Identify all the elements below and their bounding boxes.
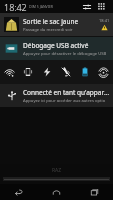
button[interactable]: Back xyxy=(0,184,37,200)
button[interactable]: Quick settings xyxy=(96,1,107,12)
staticText: DIM 5 JANVIER xyxy=(29,4,53,9)
staticText: Appuyez ici pour accéder aux autres opti… xyxy=(23,98,106,104)
button[interactable]: Auto brightness xyxy=(37,60,56,84)
button[interactable]: Settings xyxy=(81,1,92,12)
staticText: Connecté en tant qu'appareil multi. xyxy=(23,88,110,97)
staticText: Passage du mercredi soir xyxy=(23,27,73,33)
button[interactable]: Battery xyxy=(75,60,94,84)
button[interactable]: Hotspot xyxy=(94,60,113,84)
staticText: RAZ xyxy=(52,167,62,174)
staticText: Appuyez pour désactiver le débogage USB xyxy=(23,51,107,57)
button[interactable]: Home xyxy=(37,184,75,200)
button[interactable]: Sortie le sac jaune xyxy=(0,13,113,36)
staticText: 18:41 xyxy=(99,18,110,23)
button[interactable]: Recents xyxy=(75,184,113,200)
staticText: Sortie le sac jaune xyxy=(23,17,79,26)
button[interactable]: Vibrate xyxy=(18,60,37,84)
button[interactable]: Mute xyxy=(56,60,75,84)
button[interactable]: Connecté en tant qu'appareil multi. xyxy=(0,84,113,107)
staticText: 18:42 xyxy=(4,1,27,13)
button[interactable]: Débogage USB activé xyxy=(0,37,113,60)
button[interactable]: Wi-Fi xyxy=(0,60,18,84)
button[interactable]: RAZ xyxy=(0,164,113,184)
staticText: Débogage USB activé xyxy=(23,41,89,50)
